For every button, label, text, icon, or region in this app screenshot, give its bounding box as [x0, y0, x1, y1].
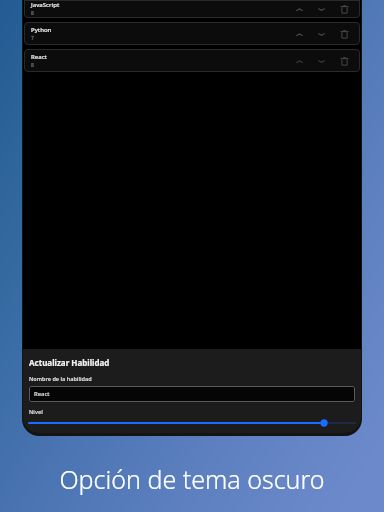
staticText: 8	[31, 10, 34, 17]
staticText: Opción de tema oscuro	[59, 462, 325, 496]
button[interactable]: Eliminar habilidad	[337, 27, 351, 41]
staticText: 8	[31, 62, 34, 69]
button[interactable]: Eliminar habilidad	[337, 54, 351, 68]
button[interactable]: Bajar nivel	[314, 2, 328, 16]
button[interactable]: JavaScript	[24, 0, 360, 18]
button[interactable]: React	[29, 386, 355, 402]
staticText: Nivel	[29, 408, 43, 415]
button[interactable]: Python	[24, 22, 360, 45]
button[interactable]: Nivel	[29, 416, 355, 430]
staticText: React	[31, 53, 47, 61]
staticText: React	[34, 390, 50, 398]
button[interactable]: Bajar nivel	[314, 27, 328, 41]
button[interactable]: Bajar nivel	[314, 54, 328, 68]
staticText: Python	[31, 26, 52, 34]
button[interactable]: Subir nivel	[292, 27, 306, 41]
button[interactable]: Subir nivel	[292, 54, 306, 68]
staticText: 7	[31, 35, 34, 42]
button[interactable]: Eliminar habilidad	[337, 2, 351, 16]
staticText: Actualizar Habilidad	[29, 357, 110, 368]
staticText: Nombre de la habilidad	[29, 375, 92, 382]
button[interactable]: React	[24, 49, 360, 72]
staticText: JavaScript	[31, 1, 60, 9]
button[interactable]: Subir nivel	[292, 2, 306, 16]
